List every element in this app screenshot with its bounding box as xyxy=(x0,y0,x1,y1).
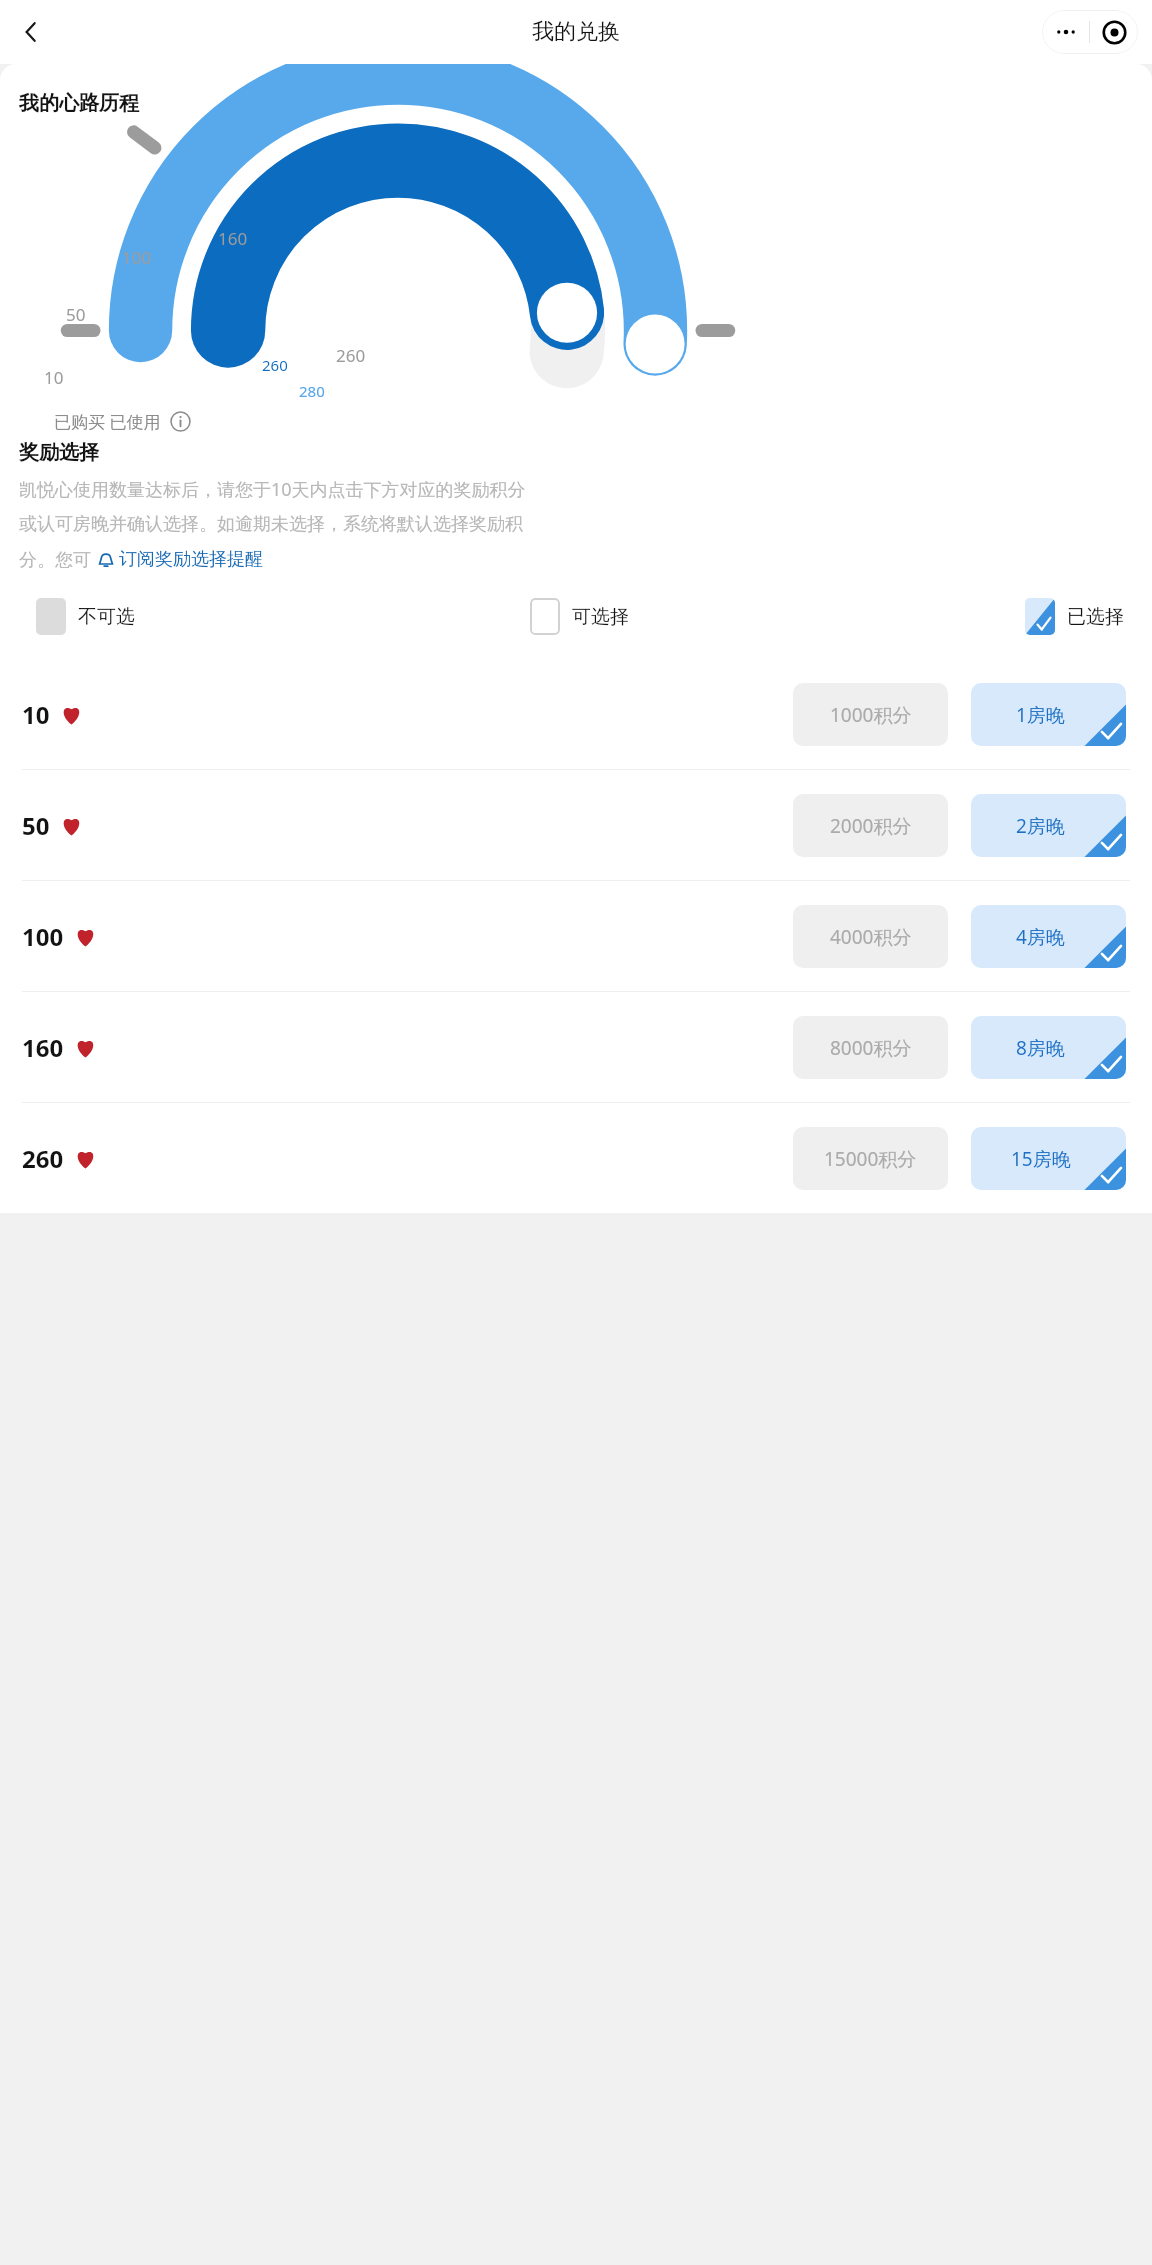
staticText: 8000积分 xyxy=(830,1035,912,1061)
staticText: 4000积分 xyxy=(830,924,912,950)
staticText: 260 xyxy=(22,1142,64,1175)
staticText: 280 xyxy=(299,381,325,401)
staticText: 100 xyxy=(122,246,152,269)
staticText: 1房晚 xyxy=(1016,702,1065,728)
staticText: 50 xyxy=(22,809,50,842)
button[interactable]: 2000积分 xyxy=(793,794,948,857)
staticText: 2房晚 xyxy=(1016,813,1065,839)
button[interactable]: 8000积分 xyxy=(793,1016,948,1079)
staticText: 15000积分 xyxy=(824,1146,917,1172)
button[interactable]: 4000积分 xyxy=(793,905,948,968)
staticText: 160 xyxy=(22,1031,64,1064)
button[interactable]: Back xyxy=(6,7,56,57)
staticText: 50 xyxy=(66,303,86,326)
staticText: 奖励选择 xyxy=(19,440,99,465)
staticText: 10 xyxy=(22,698,50,731)
button[interactable]: Close mini program xyxy=(1090,10,1138,54)
staticText: 订阅奖励选择提醒 xyxy=(119,548,263,571)
staticText: 260 xyxy=(262,355,288,375)
button[interactable]: 4房晚 xyxy=(971,905,1126,968)
staticText: 2000积分 xyxy=(830,813,912,839)
staticText: 15房晚 xyxy=(1011,1146,1071,1172)
button[interactable]: 1房晚 xyxy=(971,683,1126,746)
button[interactable]: 8房晚 xyxy=(971,1016,1126,1079)
button[interactable]: More options xyxy=(1042,10,1089,54)
staticText: 10 xyxy=(44,366,64,389)
staticText: 100 xyxy=(22,920,64,953)
staticText: 1000积分 xyxy=(830,702,912,728)
button[interactable]: 订阅奖励选择提醒 xyxy=(96,548,263,571)
staticText: 我的心路历程 xyxy=(19,91,139,116)
button[interactable]: 1000积分 xyxy=(793,683,948,746)
staticText: 或认可房晚并确认选择。如逾期未选择，系统将默认选择奖励积 xyxy=(19,513,523,536)
staticText: 160 xyxy=(218,227,248,250)
staticText: 已选择 xyxy=(1067,605,1124,629)
button[interactable]: 15000积分 xyxy=(793,1127,948,1190)
staticText: 我的兑换 xyxy=(532,18,620,46)
staticText: 8房晚 xyxy=(1016,1035,1065,1061)
staticText: 已购买 已使用 xyxy=(54,410,161,433)
staticText: 260 xyxy=(336,344,366,367)
staticText: 4房晚 xyxy=(1016,924,1065,950)
staticText: 分。您可 xyxy=(19,547,96,572)
button[interactable]: 不可选 xyxy=(36,598,135,635)
staticText: 不可选 xyxy=(78,605,135,629)
button[interactable]: 2房晚 xyxy=(971,794,1126,857)
button[interactable]: 15房晚 xyxy=(971,1127,1126,1190)
button[interactable]: 已选择 xyxy=(1025,598,1124,635)
staticText: 可选择 xyxy=(572,605,629,629)
button[interactable]: 已购买 已使用 xyxy=(54,410,191,433)
button[interactable]: 可选择 xyxy=(530,598,629,635)
staticText: 凯悦心使用数量达标后，请您于10天内点击下方对应的奖励积分 xyxy=(19,477,526,502)
